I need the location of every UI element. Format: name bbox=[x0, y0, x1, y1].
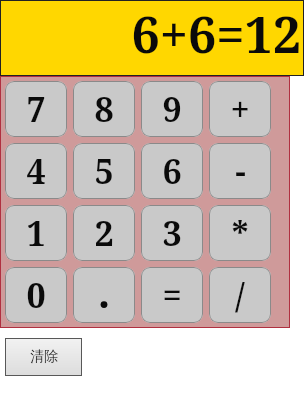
staticText: / bbox=[235, 272, 245, 318]
button[interactable]: 7 bbox=[5, 81, 67, 137]
staticText: 6+6=12 bbox=[0, 0, 301, 68]
button[interactable]: 4 bbox=[5, 143, 67, 199]
staticText: 清除 bbox=[30, 348, 58, 366]
button[interactable]: = bbox=[141, 267, 203, 323]
staticText: * bbox=[231, 210, 249, 256]
button[interactable]: 1 bbox=[5, 205, 67, 261]
staticText: - bbox=[235, 148, 246, 194]
button[interactable]: 5 bbox=[73, 143, 135, 199]
staticText: = bbox=[162, 272, 182, 318]
staticText: 2 bbox=[94, 210, 114, 256]
staticText: 4 bbox=[26, 148, 46, 194]
button[interactable]: 6+6=12 bbox=[0, 0, 304, 76]
button[interactable]: 清除 bbox=[5, 338, 82, 376]
button[interactable]: + bbox=[209, 81, 271, 137]
button[interactable]: / bbox=[209, 267, 271, 323]
button[interactable]: * bbox=[209, 205, 271, 261]
staticText: 8 bbox=[94, 86, 114, 132]
staticText: 0 bbox=[26, 272, 46, 318]
staticText: 3 bbox=[162, 210, 182, 256]
staticText: 9 bbox=[162, 86, 182, 132]
button[interactable]: 8 bbox=[73, 81, 135, 137]
button[interactable]: 6 bbox=[141, 143, 203, 199]
staticText: 6 bbox=[162, 148, 182, 194]
staticText: 7 bbox=[26, 86, 46, 132]
staticText: 5 bbox=[94, 148, 114, 194]
button[interactable]: 0 bbox=[5, 267, 67, 323]
button[interactable]: 3 bbox=[141, 205, 203, 261]
button[interactable]: 9 bbox=[141, 81, 203, 137]
staticText: + bbox=[230, 86, 250, 132]
staticText: 1 bbox=[26, 210, 46, 256]
button[interactable]: 2 bbox=[73, 205, 135, 261]
button[interactable]: . bbox=[73, 267, 135, 323]
button[interactable]: - bbox=[209, 143, 271, 199]
